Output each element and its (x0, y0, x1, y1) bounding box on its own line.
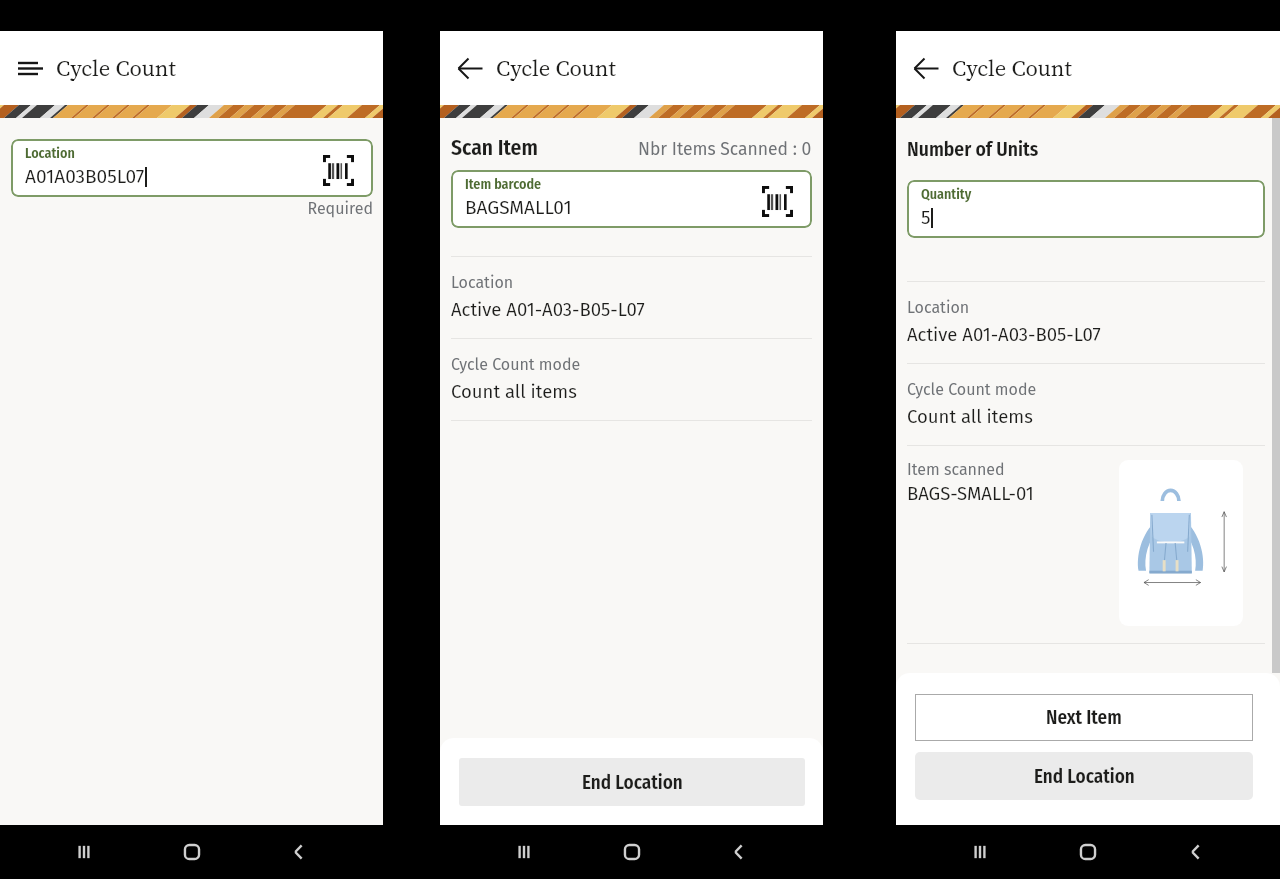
button[interactable]: Scan barcode (315, 147, 361, 193)
button[interactable]: Back (448, 46, 492, 90)
button[interactable]: End Location (915, 752, 1253, 800)
staticText: Quantity (921, 186, 972, 203)
button[interactable]: Recent apps (60, 828, 108, 876)
staticText: Location (25, 145, 75, 162)
staticText: Cycle Count (496, 53, 616, 84)
button[interactable]: Back (1172, 828, 1220, 876)
staticText: End Location (1034, 765, 1135, 788)
staticText: Active A01-A03-B05-L07 (451, 299, 645, 321)
staticText: Next Item (1046, 706, 1122, 729)
staticText: Active A01-A03-B05-L07 (907, 324, 1101, 346)
button[interactable]: Recent apps (500, 828, 548, 876)
button[interactable]: Home (608, 828, 656, 876)
button[interactable]: Back (715, 828, 763, 876)
button[interactable]: Back (275, 828, 323, 876)
staticText: A01A03B05L07 (25, 165, 145, 188)
button[interactable]: Scan barcode (754, 178, 800, 224)
button[interactable]: Next Item (915, 694, 1253, 741)
staticText: Required (11, 199, 373, 218)
button[interactable]: Open navigation menu (8, 46, 52, 90)
button[interactable]: Home (1064, 828, 1112, 876)
button[interactable]: Quantity (907, 180, 1265, 238)
staticText: Cycle Count (56, 53, 176, 84)
staticText: Count all items (451, 381, 577, 403)
staticText: Location (907, 298, 970, 317)
button[interactable]: End Location (459, 758, 805, 806)
staticText: BAGS-SMALL-01 (907, 483, 1034, 505)
staticText: Cycle Count mode (451, 355, 581, 374)
staticText: Cycle Count mode (907, 380, 1037, 399)
staticText: Item barcode (465, 176, 542, 193)
staticText: 5 (921, 206, 931, 229)
staticText: Nbr Items Scanned : 0 (638, 139, 812, 160)
staticText: Item scanned (907, 460, 1005, 479)
button[interactable]: Item barcode (451, 170, 812, 228)
staticText: Count all items (907, 406, 1033, 428)
button[interactable]: Recent apps (956, 828, 1004, 876)
button[interactable]: Location (11, 139, 373, 197)
staticText: Location (451, 273, 514, 292)
button[interactable]: Back (904, 46, 948, 90)
staticText: Cycle Count (952, 53, 1072, 84)
staticText: End Location (582, 771, 683, 794)
staticText: Scan Item (451, 135, 538, 161)
staticText: BAGSMALL01 (465, 196, 572, 219)
button[interactable]: Home (168, 828, 216, 876)
staticText: Number of Units (907, 138, 1039, 161)
